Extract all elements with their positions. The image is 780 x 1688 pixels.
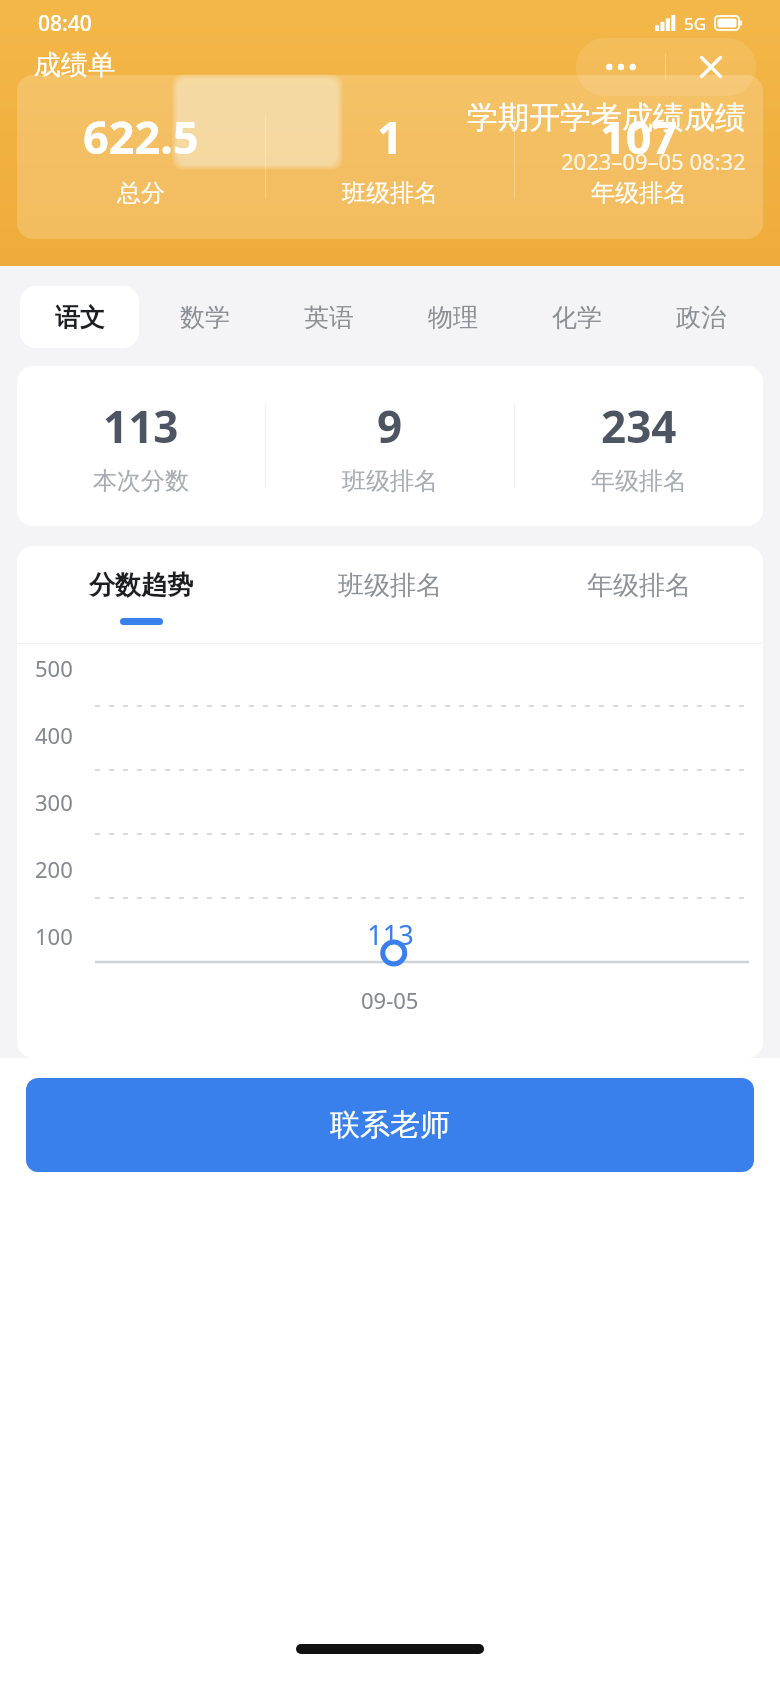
staticText: 班级排名	[338, 569, 442, 602]
staticText: 语文	[55, 302, 105, 333]
button[interactable]: 联系老师	[26, 1078, 754, 1172]
button[interactable]: 107	[515, 106, 763, 208]
button[interactable]: 物理	[394, 286, 512, 348]
staticText: 622.5	[83, 106, 199, 167]
staticText: 2023–09–05 08:32	[561, 146, 746, 176]
staticText: 年级排名	[591, 466, 687, 496]
staticText: 09-05	[361, 985, 419, 1015]
button[interactable]: Close	[666, 38, 756, 96]
staticText: 英语	[304, 302, 354, 333]
staticText: 年级排名	[591, 178, 687, 208]
staticText: 200	[35, 854, 73, 884]
button[interactable]: 语文	[20, 286, 139, 348]
staticText: 分数趋势	[89, 569, 193, 602]
button[interactable]: 622.5	[17, 106, 265, 208]
staticText: 总分	[117, 178, 165, 208]
staticText: 成绩单	[34, 48, 115, 82]
button[interactable]: 英语	[270, 286, 388, 348]
staticText: 数学	[180, 302, 230, 333]
staticText: 5G	[684, 12, 707, 35]
staticText: 113	[103, 396, 179, 456]
staticText: 113	[367, 916, 414, 953]
staticText: 学期开学考成绩成绩	[467, 98, 746, 137]
button[interactable]: 1	[266, 106, 514, 208]
staticText: 100	[35, 921, 73, 951]
staticText: 08:40	[38, 9, 92, 38]
staticText: 本次分数	[93, 466, 189, 496]
button[interactable]: 9	[266, 396, 514, 496]
staticText: 物理	[428, 302, 478, 333]
button[interactable]: 政治	[642, 286, 760, 348]
button[interactable]: 年级排名	[514, 546, 763, 643]
staticText: 300	[35, 787, 73, 817]
staticText: 班级排名	[342, 466, 438, 496]
staticText: 联系老师	[330, 1106, 450, 1144]
staticText: 化学	[552, 302, 602, 333]
staticText: 9	[377, 396, 403, 456]
button[interactable]: 113	[17, 396, 265, 496]
button[interactable]: 化学	[518, 286, 636, 348]
staticText: 班级排名	[342, 178, 438, 208]
staticText: 234	[601, 396, 677, 456]
staticText: 政治	[676, 302, 726, 333]
staticText: 500	[35, 653, 73, 683]
button[interactable]: More options	[576, 38, 665, 96]
staticText: 年级排名	[587, 569, 691, 602]
button[interactable]: 分数趋势	[17, 546, 265, 643]
staticText: 1	[377, 106, 403, 167]
staticText: 107	[600, 106, 678, 167]
button[interactable]: 数学	[145, 286, 264, 348]
button[interactable]: 班级排名	[265, 546, 514, 643]
staticText: 400	[35, 720, 73, 750]
button[interactable]: 234	[515, 396, 763, 496]
